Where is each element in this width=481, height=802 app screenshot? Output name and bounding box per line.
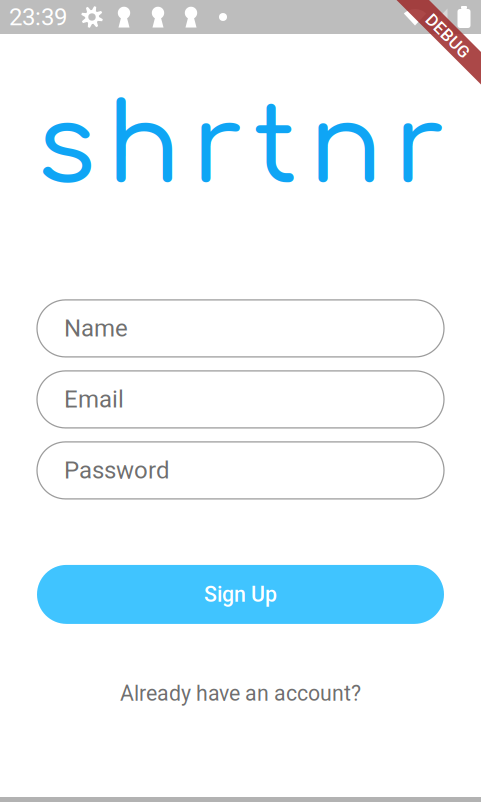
button[interactable]: Sign Up [37, 565, 444, 624]
staticText: Name [64, 314, 128, 342]
staticText: DEBUG [420, 26, 475, 46]
button[interactable]: Already have an account? [120, 681, 361, 706]
staticText: shrtnr [36, 86, 444, 208]
button[interactable]: Email [37, 371, 444, 428]
staticText: Sign Up [204, 582, 277, 607]
staticText: Email [64, 385, 124, 413]
staticText: Password [64, 456, 170, 484]
button[interactable]: Password [37, 442, 444, 499]
staticText: 23:39 [9, 3, 67, 31]
staticText: Already have an account? [120, 681, 361, 706]
button[interactable]: Name [37, 300, 444, 357]
